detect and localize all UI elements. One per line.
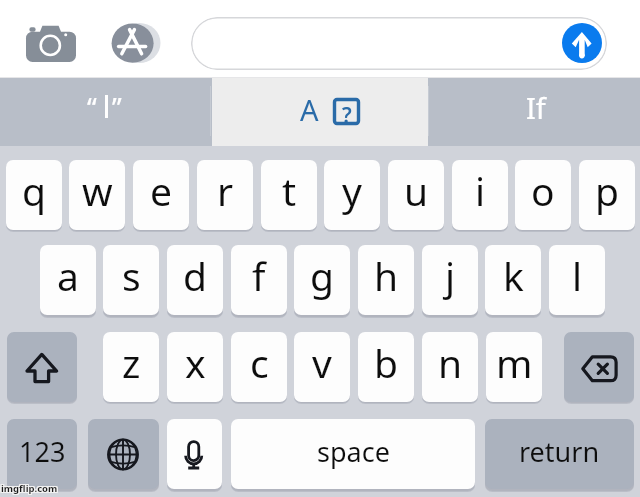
button[interactable]: z — [103, 332, 159, 402]
staticText: imgflip.com — [0, 481, 57, 494]
staticText: u — [404, 164, 429, 217]
staticText: h — [374, 249, 399, 302]
button[interactable]: Backspace — [564, 332, 634, 402]
staticText: ? — [342, 101, 352, 128]
button[interactable]: d — [167, 245, 223, 315]
button[interactable]: x — [167, 332, 223, 402]
staticText: imgflip.com — [2, 481, 59, 494]
staticText: 123 — [19, 433, 66, 470]
button[interactable]: Shift — [7, 332, 77, 402]
button[interactable]: p — [579, 160, 635, 230]
staticText: a — [57, 249, 79, 302]
button[interactable]: r — [197, 160, 253, 230]
button[interactable]: q — [6, 160, 62, 230]
button[interactable]: i — [452, 160, 508, 230]
staticText: j — [445, 249, 456, 302]
staticText: w — [82, 164, 113, 217]
staticText: imgflip.com — [1, 482, 58, 495]
staticText: imgflip.com — [2, 483, 59, 496]
button[interactable]: o — [515, 160, 571, 230]
staticText: z — [122, 336, 141, 389]
button[interactable]: If — [430, 78, 640, 146]
staticText: n — [438, 336, 463, 389]
button[interactable]: t — [261, 160, 317, 230]
button[interactable]: w — [69, 160, 125, 230]
staticText: x — [185, 336, 206, 389]
staticText: v — [312, 336, 332, 389]
staticText: imgflip.com — [0, 482, 57, 495]
staticText: l — [572, 249, 583, 302]
button[interactable]: j — [422, 245, 478, 315]
staticText: imgflip.com — [1, 483, 58, 496]
button[interactable]: A — [212, 78, 428, 146]
staticText: return — [519, 433, 600, 470]
staticText: s — [122, 249, 141, 302]
staticText: c — [250, 336, 269, 389]
button[interactable]: App Store — [108, 20, 162, 66]
staticText: If — [526, 88, 546, 127]
button[interactable]: m — [486, 332, 542, 402]
button[interactable]: Send — [562, 23, 602, 63]
button[interactable]: k — [485, 245, 541, 315]
staticText: imgflip.com — [0, 483, 57, 496]
button[interactable]: l — [549, 245, 605, 315]
staticText: r — [217, 164, 234, 217]
button[interactable]: “ — [0, 78, 210, 146]
button[interactable]: e — [133, 160, 189, 230]
button[interactable]: y — [324, 160, 380, 230]
staticText: y — [342, 164, 362, 217]
button[interactable]: c — [231, 332, 287, 402]
staticText: q — [22, 164, 46, 217]
staticText: i — [475, 164, 486, 217]
button[interactable]: b — [358, 332, 414, 402]
button[interactable]: n — [422, 332, 478, 402]
button[interactable]: u — [388, 160, 444, 230]
button[interactable] — [191, 17, 607, 70]
staticText: g — [310, 249, 334, 302]
staticText: imgflip.com — [1, 481, 58, 494]
staticText: o — [531, 164, 555, 217]
staticText: k — [503, 249, 524, 302]
button[interactable]: a — [40, 245, 96, 315]
staticText: imgflip.com — [2, 482, 59, 495]
staticText: p — [595, 164, 619, 217]
button[interactable]: v — [294, 332, 350, 402]
button[interactable]: f — [231, 245, 287, 315]
button[interactable]: h — [358, 245, 414, 315]
staticText: space — [317, 433, 390, 470]
button[interactable]: g — [294, 245, 350, 315]
staticText: “ — [87, 89, 97, 126]
staticText: m — [496, 336, 533, 389]
staticText: ” — [112, 89, 122, 126]
button[interactable]: return — [485, 419, 634, 489]
staticText: t — [282, 164, 297, 217]
button[interactable]: s — [103, 245, 159, 315]
staticText: e — [150, 164, 172, 217]
button[interactable]: Dictate — [167, 419, 222, 489]
staticText: b — [374, 336, 398, 389]
button[interactable]: space — [231, 419, 475, 489]
button[interactable]: 123 — [7, 419, 77, 489]
staticText: d — [183, 249, 207, 302]
staticText: A — [300, 90, 319, 129]
staticText: f — [252, 249, 266, 302]
button[interactable]: Switch keyboard — [88, 419, 159, 489]
button[interactable]: Camera — [26, 25, 76, 62]
